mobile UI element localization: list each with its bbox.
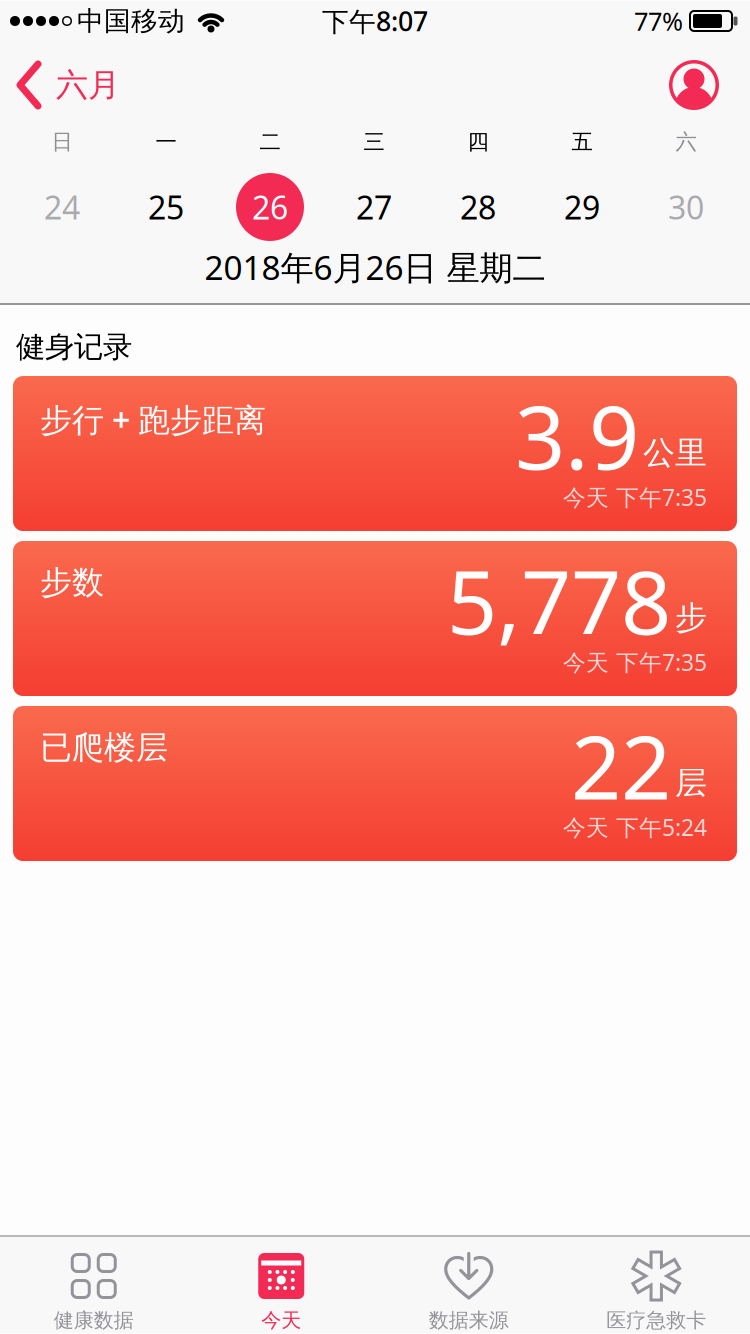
staticText: 28: [460, 186, 496, 228]
staticText: 五: [571, 129, 592, 155]
staticText: 二: [259, 129, 280, 155]
staticText: 29: [564, 186, 600, 228]
staticText: 77%: [634, 4, 683, 38]
staticText: 下午8:07: [322, 3, 428, 39]
button[interactable]: 27: [322, 167, 426, 247]
staticText: 步: [675, 598, 707, 638]
staticText: 健康数据: [54, 1308, 134, 1333]
button[interactable]: 步行 + 跑步距离: [13, 376, 737, 531]
button[interactable]: 步数: [13, 541, 737, 696]
staticText: 24: [44, 186, 80, 228]
staticText: 三: [363, 129, 384, 155]
staticText: 日: [51, 129, 72, 155]
staticText: 26: [252, 186, 288, 228]
staticText: 5,778: [447, 542, 671, 659]
staticText: 一: [155, 129, 176, 155]
staticText: 数据来源: [429, 1308, 509, 1333]
button[interactable]: 24: [10, 167, 114, 247]
staticText: 25: [148, 186, 184, 228]
button[interactable]: 28: [426, 167, 530, 247]
staticText: 今天 下午7:35: [563, 647, 707, 677]
button[interactable]: [669, 60, 719, 110]
staticText: 步行 + 跑步距离: [40, 398, 266, 440]
staticText: 2018年6月26日 星期二: [204, 245, 545, 289]
button[interactable]: 29: [530, 167, 634, 247]
staticText: 六月: [56, 65, 120, 105]
button[interactable]: 数据来源: [375, 1237, 562, 1333]
staticText: 步数: [40, 563, 104, 602]
staticText: 六: [675, 129, 696, 155]
staticText: 27: [356, 186, 392, 228]
staticText: 已爬楼层: [40, 728, 168, 767]
staticText: 今天 下午5:24: [563, 812, 707, 842]
staticText: 层: [675, 763, 707, 803]
staticText: 30: [668, 186, 704, 228]
button[interactable]: 健康数据: [0, 1237, 187, 1333]
staticText: 中国移动: [77, 5, 185, 37]
button[interactable]: 今天: [187, 1237, 375, 1333]
staticText: 今天: [261, 1308, 301, 1333]
staticText: 健身记录: [16, 329, 132, 365]
staticText: 公里: [643, 433, 707, 473]
button[interactable]: 六月: [14, 60, 120, 110]
staticText: 医疗急救卡: [606, 1308, 706, 1333]
button[interactable]: 已爬楼层: [13, 706, 737, 861]
staticText: 四: [467, 129, 488, 155]
button[interactable]: 30: [634, 167, 738, 247]
button[interactable]: 医疗急救卡: [562, 1237, 750, 1333]
staticText: 22: [571, 707, 671, 824]
staticText: 今天 下午7:35: [563, 482, 707, 512]
button[interactable]: 26: [218, 167, 322, 247]
button[interactable]: 25: [114, 167, 218, 247]
staticText: 3.9: [515, 377, 639, 494]
